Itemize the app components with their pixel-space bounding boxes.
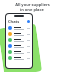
button[interactable] (6, 55, 32, 61)
button[interactable] (6, 49, 32, 55)
staticText: in one place (20, 7, 44, 12)
button[interactable] (6, 25, 32, 31)
button[interactable] (6, 43, 32, 49)
staticText: All your suppliers (15, 2, 50, 7)
staticText: Chats (8, 19, 20, 24)
button[interactable] (6, 37, 32, 43)
button[interactable] (6, 31, 32, 37)
